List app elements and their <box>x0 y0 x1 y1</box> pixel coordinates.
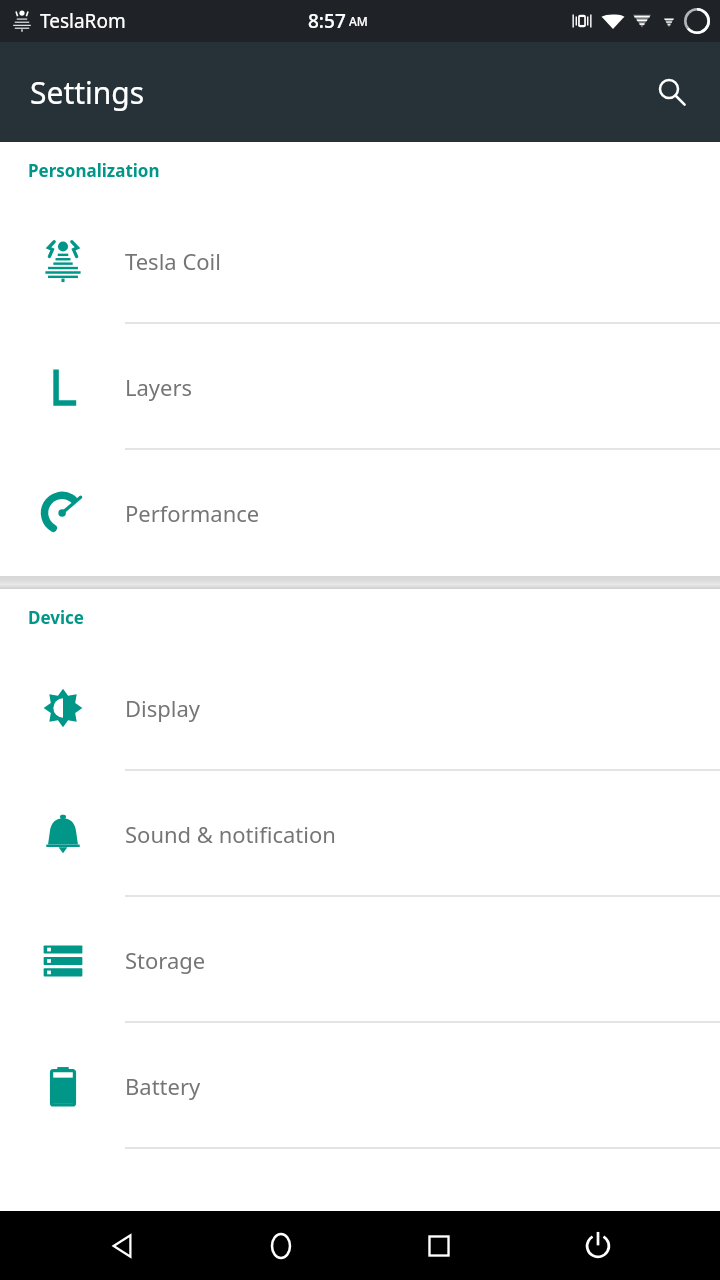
button[interactable]: Storage <box>0 897 720 1023</box>
staticText: Performance <box>125 498 260 528</box>
button[interactable]: Back <box>86 1211 158 1280</box>
staticText: 8:57 <box>308 8 346 34</box>
staticText: Personalization <box>28 159 160 182</box>
button[interactable]: Home <box>245 1211 317 1280</box>
button[interactable]: Sound & notification <box>0 771 720 897</box>
button[interactable]: Display <box>0 645 720 771</box>
staticText: Display <box>125 693 201 723</box>
staticText: AM <box>349 13 368 29</box>
staticText: Tesla Coil <box>125 246 221 276</box>
button[interactable]: Performance <box>0 450 720 576</box>
staticText: Battery <box>125 1071 201 1101</box>
staticText: TeslaRom <box>40 8 126 34</box>
button[interactable]: Layers <box>0 324 720 450</box>
button[interactable]: Recent apps <box>403 1211 475 1280</box>
button[interactable]: Tesla Coil <box>0 198 720 324</box>
staticText: Storage <box>125 945 206 975</box>
button[interactable]: Power <box>562 1211 634 1280</box>
button[interactable]: Search <box>646 66 698 118</box>
staticText: Layers <box>125 372 193 402</box>
button[interactable]: Battery <box>0 1023 720 1149</box>
staticText: Sound & notification <box>125 819 336 849</box>
staticText: Settings <box>30 72 145 113</box>
staticText: Device <box>28 606 84 629</box>
